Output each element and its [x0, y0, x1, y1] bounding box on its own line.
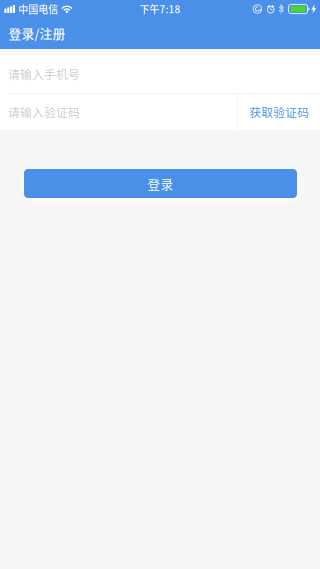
button[interactable]: 请输入验证码	[0, 94, 238, 130]
staticText: 请输入手机号	[8, 65, 80, 82]
staticText: 中国电信	[18, 2, 58, 16]
button[interactable]: 请输入手机号	[0, 55, 320, 93]
staticText: 登录	[147, 174, 173, 193]
staticText: 请输入验证码	[8, 103, 80, 120]
staticText: 下午7:18	[139, 2, 180, 16]
button[interactable]: 获取验证码	[238, 94, 320, 130]
button[interactable]: 登录	[24, 169, 297, 198]
staticText: 获取验证码	[249, 103, 309, 120]
staticText: 登录/注册	[8, 23, 65, 42]
